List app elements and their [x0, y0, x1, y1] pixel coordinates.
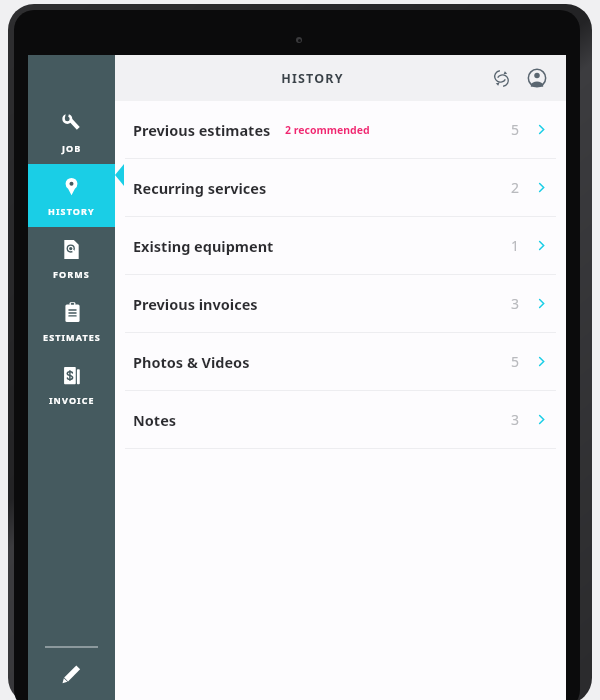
staticText: JOB [62, 142, 82, 154]
staticText: INVOICE [49, 394, 95, 406]
button[interactable]: ESTIMATES [28, 290, 115, 353]
button[interactable]: JOB [28, 101, 115, 164]
staticText: 5 [511, 352, 520, 371]
button[interactable]: Sync [484, 61, 518, 95]
button[interactable]: Photos & Videos [115, 333, 566, 390]
button[interactable]: Account [520, 61, 554, 95]
button[interactable]: Recurring services [115, 159, 566, 216]
staticText: 2 [511, 178, 520, 197]
button[interactable]: Edit [28, 648, 115, 700]
button[interactable]: Notes [115, 391, 566, 448]
button[interactable]: FORMS [28, 227, 115, 290]
staticText: Previous estimates [133, 120, 271, 140]
staticText: HISTORY [281, 70, 344, 87]
button[interactable]: HISTORY [28, 164, 115, 227]
staticText: Recurring services [133, 178, 267, 198]
staticText: Notes [133, 410, 177, 430]
staticText: 2 recommended [285, 123, 370, 137]
staticText: 1 [511, 236, 520, 255]
button[interactable]: Existing equipment [115, 217, 566, 274]
staticText: 3 [511, 294, 520, 313]
staticText: 5 [511, 120, 520, 139]
staticText: Existing equipment [133, 236, 274, 256]
button[interactable]: INVOICE [28, 353, 115, 416]
staticText: ESTIMATES [43, 331, 101, 343]
button[interactable]: Previous estimates [115, 101, 566, 158]
staticText: FORMS [53, 268, 90, 280]
staticText: 3 [511, 410, 520, 429]
button[interactable]: Previous invoices [115, 275, 566, 332]
staticText: Photos & Videos [133, 352, 250, 372]
staticText: HISTORY [48, 205, 95, 217]
staticText: Previous invoices [133, 294, 258, 314]
